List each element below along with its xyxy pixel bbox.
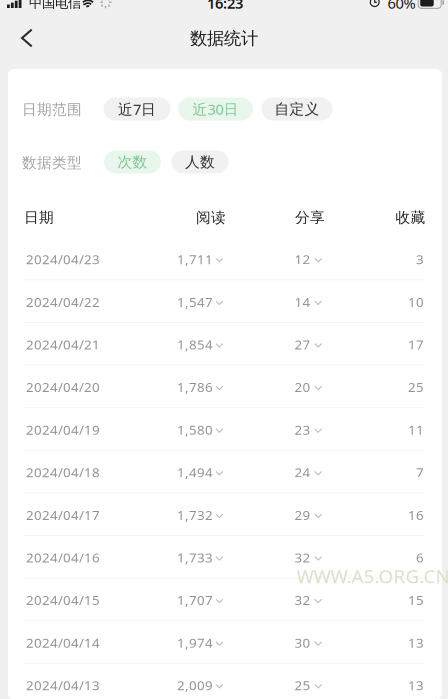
staticText: 数据统计 (190, 28, 258, 49)
staticText: 2024/04/23 (26, 250, 100, 268)
staticText: 1,733 (177, 548, 213, 566)
staticText: 29 (294, 506, 310, 524)
staticText: 12 (294, 250, 310, 268)
staticText: 15 (408, 591, 424, 609)
staticText: 25 (294, 676, 310, 694)
button[interactable]: 近7日 (103, 97, 170, 120)
button[interactable]: 人数 (171, 150, 228, 173)
staticText: 1,494 (177, 463, 213, 481)
staticText: 近30日 (192, 99, 238, 119)
button[interactable]: 近30日 (178, 97, 253, 120)
staticText: 11 (408, 421, 424, 438)
staticText: 32 (294, 548, 310, 566)
staticText: WWW.A5.ORG.CN (296, 564, 448, 588)
staticText: 16 (408, 506, 424, 524)
staticText: 自定义 (274, 100, 319, 118)
staticText: 日期范围 (22, 100, 82, 118)
staticText: 3 (416, 250, 424, 268)
staticText: 60% (387, 0, 415, 13)
staticText: 分享 (295, 208, 325, 226)
staticText: 17 (408, 335, 424, 353)
staticText: 1,854 (177, 335, 213, 353)
staticText: 13 (408, 676, 424, 694)
staticText: 2024/04/16 (26, 548, 100, 566)
staticText: 1,786 (177, 378, 213, 396)
staticText: 2024/04/18 (26, 463, 100, 481)
staticText: 2024/04/20 (26, 378, 100, 396)
staticText: 2024/04/21 (26, 335, 100, 353)
staticText: 次数 (117, 153, 147, 171)
staticText: 14 (294, 293, 310, 311)
staticText: 中国电信 (29, 0, 81, 11)
staticText: 13 (408, 634, 424, 651)
staticText: 近7日 (118, 99, 156, 119)
button[interactable]: Back (6, 16, 47, 59)
staticText: 25 (408, 378, 424, 396)
staticText: 2024/04/22 (26, 293, 100, 311)
staticText: 阅读 (196, 208, 226, 226)
staticText: 2024/04/19 (26, 421, 100, 438)
staticText: 2,009 (177, 676, 213, 694)
staticText: 日期 (24, 208, 54, 226)
staticText: 2024/04/13 (26, 676, 100, 694)
staticText: 30 (294, 634, 310, 651)
staticText: 1,711 (177, 250, 213, 268)
staticText: 1,547 (177, 293, 213, 311)
staticText: 1,732 (177, 506, 213, 524)
staticText: 收藏 (395, 208, 425, 226)
staticText: 7 (416, 463, 424, 481)
staticText: 27 (294, 335, 310, 353)
staticText: 23 (294, 421, 310, 438)
button[interactable]: 次数 (104, 150, 161, 173)
staticText: 2024/04/14 (26, 634, 100, 651)
staticText: 32 (294, 591, 310, 609)
staticText: 2024/04/15 (26, 591, 100, 609)
staticText: 1,580 (177, 421, 213, 438)
staticText: 16:23 (207, 0, 243, 13)
staticText: 10 (408, 293, 424, 311)
staticText: 24 (294, 463, 310, 481)
staticText: 1,974 (177, 634, 213, 651)
staticText: 人数 (185, 153, 215, 171)
staticText: 6 (416, 548, 424, 566)
staticText: 2024/04/17 (26, 506, 100, 524)
staticText: 数据类型 (22, 154, 82, 172)
button[interactable]: 自定义 (261, 97, 332, 120)
staticText: 1,707 (177, 591, 213, 609)
staticText: 20 (294, 378, 310, 396)
